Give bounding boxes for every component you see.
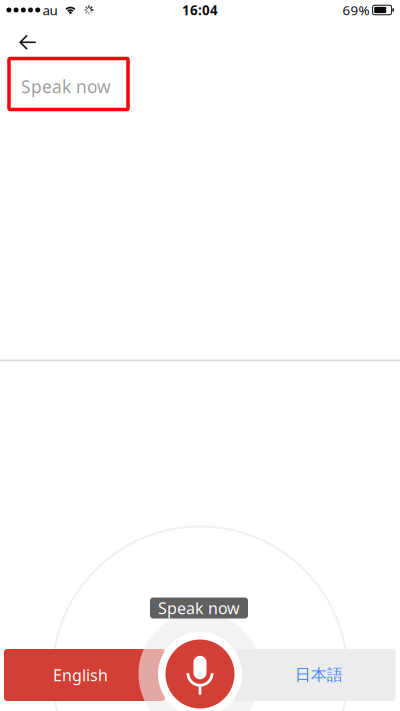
staticText: Speak now bbox=[158, 597, 240, 619]
button[interactable]: Stop voice input bbox=[165, 639, 234, 708]
staticText: 日本語 bbox=[295, 665, 343, 685]
button[interactable]: 日本語 bbox=[233, 649, 395, 701]
staticText: English bbox=[53, 664, 108, 686]
button[interactable]: Back bbox=[7, 25, 48, 60]
staticText: Speak now bbox=[21, 75, 111, 98]
staticText: 69% bbox=[342, 1, 369, 19]
staticText: 16:04 bbox=[182, 1, 218, 19]
staticText: au bbox=[42, 1, 57, 19]
button[interactable]: English bbox=[4, 649, 165, 701]
